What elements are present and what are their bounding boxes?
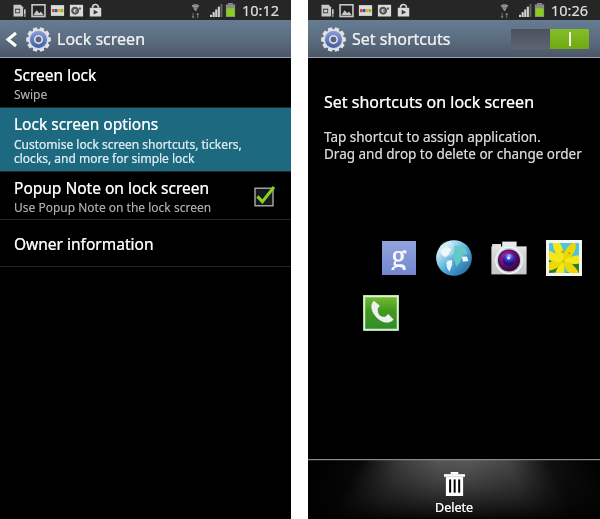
button[interactable]: Popup Note on lock screen xyxy=(0,172,291,219)
staticText: Use Popup Note on the lock screen xyxy=(14,199,212,215)
staticText: Delete xyxy=(435,499,474,516)
staticText: Swipe xyxy=(14,86,48,102)
button[interactable]: Screen lock xyxy=(0,58,291,107)
staticText: g xyxy=(391,236,407,270)
staticText: Owner information xyxy=(14,233,154,254)
button[interactable]: Navigate up xyxy=(2,20,22,58)
staticText: 10:12 xyxy=(242,0,280,20)
staticText: Lock screen xyxy=(57,28,146,50)
button[interactable]: Internet shortcut xyxy=(435,239,473,277)
button[interactable]: Popup Note on lock screen checkbox, chec… xyxy=(254,186,274,206)
button[interactable]: Google shortcut xyxy=(382,241,416,275)
staticText: Popup Note on lock screen xyxy=(14,177,210,198)
button[interactable]: Set shortcuts on/off switch, on xyxy=(511,29,589,49)
button[interactable]: Lock screen options xyxy=(0,108,291,171)
button[interactable]: Owner information xyxy=(0,220,291,266)
staticText: 10:26 xyxy=(551,0,589,20)
button[interactable]: Gallery shortcut xyxy=(546,240,582,276)
button[interactable]: Phone shortcut xyxy=(363,295,399,331)
staticText: Set shortcuts on lock screen xyxy=(324,91,535,113)
staticText: Set shortcuts xyxy=(352,28,451,50)
staticText: Tap shortcut to assign application. Drag… xyxy=(324,128,582,163)
button[interactable]: Camera shortcut xyxy=(489,240,529,280)
staticText: Lock screen options xyxy=(14,113,159,134)
staticText: Screen lock xyxy=(14,64,97,85)
button[interactable]: Delete xyxy=(308,459,600,519)
staticText: Customise lock screen shortcuts, tickers… xyxy=(14,136,242,167)
